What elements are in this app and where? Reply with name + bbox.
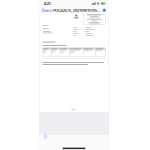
staticText: POLIZZE75_20210901070529.pdf (53, 8, 101, 13)
button[interactable]: Done (41, 7, 52, 14)
button[interactable]: Share (42, 132, 49, 140)
staticText: 4:21 (44, 1, 51, 6)
button[interactable]: Markup (102, 7, 107, 13)
staticText: Done (42, 8, 52, 13)
